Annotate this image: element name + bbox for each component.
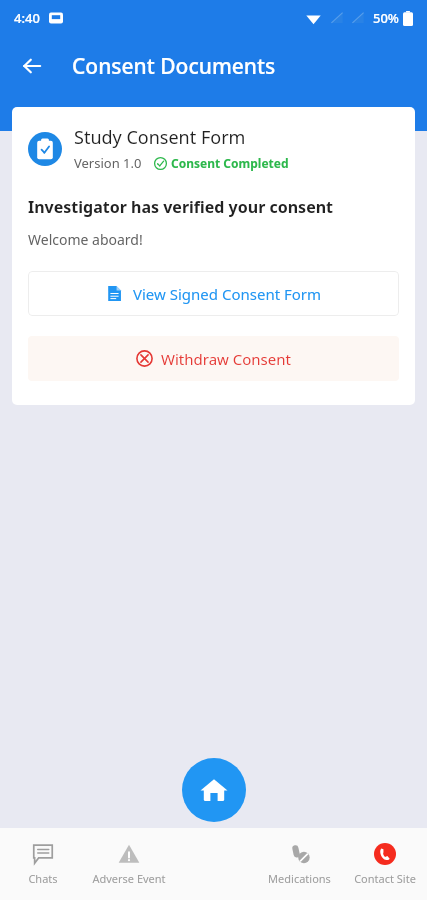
button[interactable]: Chats [0, 828, 86, 900]
button[interactable]: Contact Site [342, 828, 427, 900]
staticText: 4:40 [14, 9, 40, 27]
staticText: Investigator has verified your consent [28, 196, 334, 218]
staticText: Version 1.0 [74, 154, 142, 172]
staticText: 50% [373, 9, 399, 27]
staticText: Withdraw Consent [161, 349, 291, 369]
staticText: Consent Documents [72, 52, 276, 81]
staticText: View Signed Consent Form [133, 284, 322, 304]
staticText: Welcome aboard! [28, 230, 143, 249]
button[interactable]: Home [182, 758, 246, 822]
staticText: Medications [268, 871, 331, 886]
staticText: Study Consent Form [74, 125, 246, 150]
staticText: Adverse Event [92, 871, 166, 886]
staticText: Chats [28, 871, 58, 886]
button[interactable]: Back [12, 46, 52, 86]
staticText: Consent Completed [171, 155, 289, 171]
staticText: Contact Site [354, 871, 416, 886]
button[interactable]: View Signed Consent Form [28, 271, 399, 316]
button[interactable]: Medications [257, 828, 342, 900]
button[interactable]: Adverse Event [86, 828, 172, 900]
button[interactable]: Withdraw Consent [28, 336, 399, 381]
